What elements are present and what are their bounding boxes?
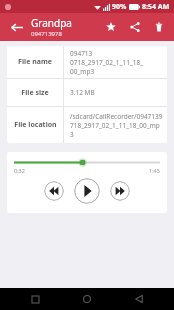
button[interactable]: Delete — [150, 18, 168, 36]
button[interactable]: Share — [126, 18, 144, 36]
staticText: 094713978 — [31, 30, 62, 38]
button[interactable]: Back — [6, 17, 26, 37]
staticText: 3.12 MB — [70, 88, 95, 97]
button[interactable]: Favorite — [102, 18, 120, 36]
button[interactable]: Play — [74, 178, 100, 204]
staticText: 90% — [112, 2, 127, 12]
staticText: Grandpa — [31, 16, 72, 30]
staticText: /sdcard/CallRecorder/0947139 718_2917_02… — [70, 112, 163, 139]
button[interactable] — [14, 158, 160, 167]
staticText: File location — [14, 120, 57, 130]
staticText: File size — [21, 88, 49, 98]
button[interactable]: Rewind — [44, 181, 64, 201]
staticText: File name — [18, 57, 52, 67]
button[interactable]: Home — [78, 290, 96, 308]
staticText: 0:32 — [14, 167, 25, 174]
button[interactable]: Fast forward — [110, 181, 130, 201]
staticText: 094713 0718_2917_02_1_11_18_ 00_mp3 — [70, 49, 163, 76]
staticText: 1:45 — [149, 167, 160, 174]
button[interactable]: Recents — [26, 290, 44, 308]
staticText: 8:54 AM — [142, 2, 170, 12]
button[interactable]: Back — [130, 290, 148, 308]
